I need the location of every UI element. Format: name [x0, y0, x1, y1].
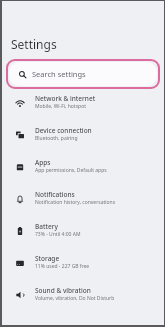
staticText: Network & internet	[35, 94, 96, 103]
button[interactable]: Sound & vibration	[2, 281, 164, 313]
staticText: Device connection	[35, 126, 92, 135]
button[interactable]: Device connection	[2, 121, 164, 153]
staticText: Apps	[35, 158, 51, 167]
staticText: Bluetooth, pairing	[35, 135, 78, 142]
staticText: App permissions, Default apps	[35, 167, 107, 174]
button[interactable]: Notifications	[2, 185, 164, 217]
staticText: Notifications	[35, 190, 75, 199]
button[interactable]: Storage	[2, 249, 164, 281]
staticText: Battery	[35, 222, 58, 231]
staticText: Mobile, Wi‑Fi, hotspot	[35, 103, 86, 110]
staticText: Search settings	[32, 69, 86, 79]
staticText: 11% used - 227 GB free	[35, 263, 90, 270]
button[interactable]: Search settings	[9, 62, 157, 86]
staticText: Settings	[11, 36, 57, 52]
staticText: Volume, vibration, Do Not Disturb	[35, 295, 115, 302]
staticText: Storage	[35, 254, 60, 263]
staticText: Sound & vibration	[35, 286, 91, 295]
staticText: Notification history, conversations	[35, 199, 116, 206]
button[interactable]: Apps	[2, 153, 164, 185]
button[interactable]: Network & internet	[2, 89, 164, 121]
button[interactable]: Battery	[2, 217, 164, 249]
staticText: 73% - Until 4:00 AM	[35, 231, 81, 238]
